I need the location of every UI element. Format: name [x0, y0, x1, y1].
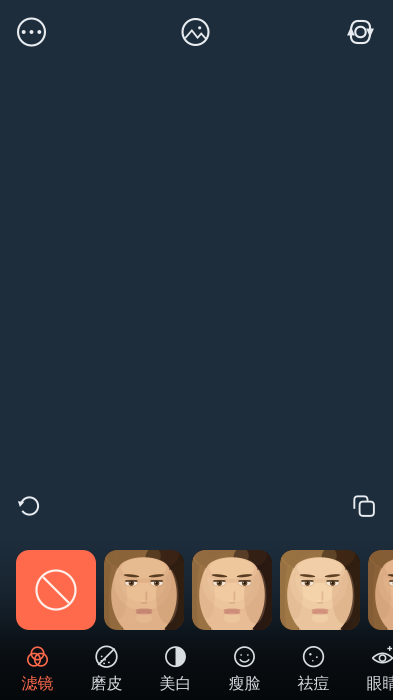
- button[interactable]: 美白: [141, 640, 210, 698]
- button[interactable]: No filter: [16, 550, 96, 630]
- staticText: 美白: [159, 674, 191, 693]
- button[interactable]: 滤镜: [3, 640, 72, 698]
- button[interactable]: Compare: [342, 484, 386, 528]
- staticText: 滤镜: [21, 674, 53, 693]
- button[interactable]: Switch camera: [346, 17, 375, 46]
- button[interactable]: Filter 2: [192, 550, 272, 630]
- button[interactable]: Filter 1: [104, 550, 184, 630]
- staticText: 瘦脸: [228, 674, 260, 693]
- button[interactable]: 眼睛: [348, 640, 393, 698]
- button[interactable]: 瘦脸: [210, 640, 279, 698]
- button[interactable]: 磨皮: [72, 640, 141, 698]
- staticText: 眼睛: [366, 674, 393, 693]
- staticText: 祛痘: [297, 674, 329, 693]
- button[interactable]: Filter 3: [280, 550, 360, 630]
- button[interactable]: Filter 4: [368, 550, 393, 630]
- button[interactable]: More options: [18, 18, 45, 45]
- button[interactable]: 祛痘: [279, 640, 348, 698]
- button[interactable]: Photo library: [182, 19, 208, 45]
- button[interactable]: Reset: [7, 484, 51, 528]
- staticText: 磨皮: [90, 674, 122, 693]
